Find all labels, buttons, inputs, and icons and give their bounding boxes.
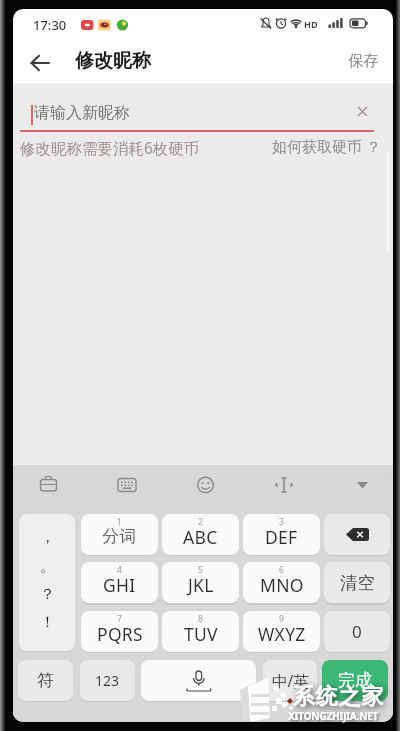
button[interactable]: 6 <box>243 562 320 603</box>
staticText: 4 <box>117 564 122 576</box>
staticText: 6 <box>279 564 284 576</box>
staticText: PQRS <box>97 622 143 646</box>
staticText: TUV <box>184 622 218 646</box>
staticText: 保存 <box>348 51 379 71</box>
button[interactable]: 中/英 <box>263 660 317 701</box>
button[interactable]: 1 <box>81 514 158 555</box>
staticText: 请输入新昵称 <box>34 103 130 123</box>
staticText: 中/英 <box>272 670 309 691</box>
staticText: 7 <box>117 613 122 625</box>
staticText: S <box>377 457 392 492</box>
staticText: ？ <box>40 585 55 604</box>
button[interactable] <box>112 470 142 500</box>
button[interactable]: 5 <box>162 562 239 603</box>
staticText: GHI <box>103 573 136 597</box>
staticText: 2 <box>198 516 203 528</box>
staticText: HD <box>304 18 318 30</box>
staticText: XITONGZHIJIA.NET <box>288 709 379 723</box>
button[interactable]: ， <box>19 514 75 651</box>
staticText: 修改昵称需要消耗6枚硬币 <box>20 137 200 158</box>
staticText: 5 <box>198 564 203 576</box>
staticText: 如何获取硬币 ？ <box>272 136 381 156</box>
staticText: ， <box>40 528 55 547</box>
staticText: 123 <box>95 671 120 690</box>
staticText: 分词 <box>102 526 137 547</box>
button[interactable]: 9 <box>243 611 320 652</box>
button[interactable] <box>348 470 378 500</box>
button[interactable]: 8 <box>162 611 239 652</box>
staticText: 完成 <box>338 670 372 691</box>
staticText: ！ <box>40 613 55 632</box>
staticText: 清空 <box>340 572 375 594</box>
staticText: 0 <box>352 620 362 643</box>
button[interactable]: 保存 <box>339 47 387 75</box>
button[interactable] <box>34 470 64 500</box>
button[interactable]: 7 <box>81 611 158 652</box>
staticText: 3 <box>279 516 284 528</box>
button[interactable]: 符 <box>18 660 73 701</box>
button[interactable]: 0 <box>324 611 390 652</box>
staticText: 17:30 <box>33 16 67 34</box>
staticText: 修改昵称 <box>75 49 151 73</box>
button[interactable] <box>324 514 390 555</box>
button[interactable]: 如何获取硬币 ？ <box>261 135 381 157</box>
button[interactable]: 清空 <box>324 562 390 603</box>
button[interactable] <box>141 660 256 701</box>
button[interactable] <box>351 100 373 122</box>
staticText: 系统之家 <box>292 683 384 711</box>
staticText: 。 <box>40 557 55 576</box>
button[interactable] <box>191 470 221 500</box>
staticText: 9 <box>279 613 284 625</box>
staticText: DEF <box>265 525 298 549</box>
button[interactable] <box>269 470 299 500</box>
staticText: 符 <box>37 670 54 691</box>
button[interactable]: 完成 <box>322 660 388 701</box>
button[interactable]: 2 <box>162 514 239 555</box>
staticText: JKL <box>188 573 214 597</box>
button[interactable]: 4 <box>81 562 158 603</box>
staticText: WXYZ <box>258 622 306 646</box>
staticText: 1 <box>117 516 122 528</box>
staticText: MNO <box>260 573 304 597</box>
staticText: 8 <box>198 613 203 625</box>
staticText: ABC <box>183 525 218 549</box>
button[interactable]: 123 <box>80 660 135 701</box>
button[interactable]: 3 <box>243 514 320 555</box>
button[interactable] <box>25 50 55 76</box>
